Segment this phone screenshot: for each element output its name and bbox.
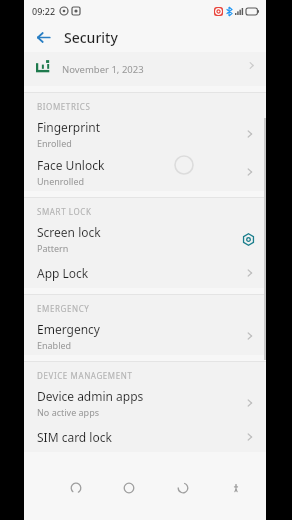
button[interactable]: Screen lock bbox=[24, 220, 266, 258]
staticText: EMERGENCY bbox=[37, 303, 90, 314]
staticText: 09:22 bbox=[32, 5, 56, 17]
staticText: November 1, 2023 bbox=[62, 63, 144, 76]
button[interactable]: SIM card lock bbox=[24, 422, 266, 452]
staticText: Enrolled bbox=[37, 137, 72, 149]
staticText: App Lock bbox=[37, 265, 89, 281]
button[interactable]: Back bbox=[50, 476, 102, 500]
staticText: Emergency bbox=[37, 321, 100, 337]
button[interactable]: Recents bbox=[156, 476, 209, 500]
button[interactable]: Fingerprint bbox=[24, 115, 266, 153]
button[interactable]: Back bbox=[30, 24, 56, 50]
button[interactable]: Home bbox=[103, 476, 155, 500]
staticText: SMART LOCK bbox=[37, 206, 92, 217]
staticText: Fingerprint bbox=[37, 119, 101, 135]
button[interactable]: Emergency bbox=[24, 317, 266, 355]
button[interactable]: Device admin apps bbox=[24, 384, 266, 422]
staticText: Security bbox=[64, 28, 118, 47]
staticText: Screen lock bbox=[37, 224, 101, 240]
staticText: No active apps bbox=[37, 406, 99, 418]
staticText: Device admin apps bbox=[37, 388, 144, 404]
staticText: Enabled bbox=[37, 339, 72, 351]
button[interactable]: November 1, 2023 bbox=[24, 52, 266, 86]
staticText: Face Unlock bbox=[37, 157, 105, 173]
staticText: BIOMETRICS bbox=[37, 101, 91, 112]
staticText: DEVICE MANAGEMENT bbox=[37, 370, 133, 381]
staticText: SIM card lock bbox=[37, 429, 112, 445]
button[interactable]: Accessibility bbox=[209, 476, 262, 500]
button[interactable]: Face Unlock bbox=[24, 153, 266, 191]
button[interactable]: App Lock bbox=[24, 258, 266, 288]
staticText: Pattern bbox=[37, 242, 69, 254]
staticText: Unenrolled bbox=[37, 175, 85, 187]
